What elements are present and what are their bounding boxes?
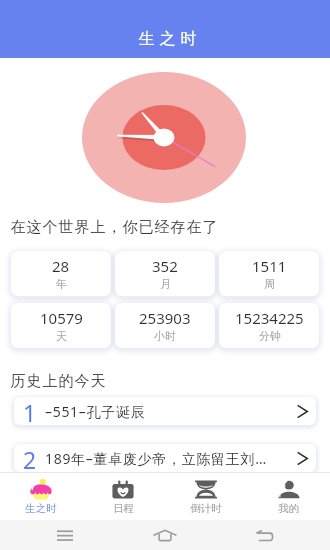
staticText: 小时 xyxy=(154,329,176,343)
staticText: 生之时 xyxy=(136,29,199,49)
staticText: 15234225 xyxy=(235,308,304,328)
other: 我的 xyxy=(277,479,301,500)
staticText: 天 xyxy=(56,329,67,343)
staticText: 分钟 xyxy=(259,329,281,343)
staticText: 日程 xyxy=(113,502,134,515)
button[interactable]: 253903 xyxy=(115,303,215,348)
button[interactable]: 15234225 xyxy=(219,303,319,348)
other: 倒计时 xyxy=(194,479,218,500)
staticText: 352 xyxy=(152,256,178,276)
staticText: 生之时 xyxy=(25,502,57,515)
staticText: –551–孔子诞辰 xyxy=(45,402,292,421)
button[interactable]: 28 xyxy=(11,251,111,296)
staticText: 周 xyxy=(264,277,275,291)
staticText: 我的 xyxy=(278,502,299,515)
staticText: 1511 xyxy=(252,256,287,276)
button[interactable]: 生之时 xyxy=(0,474,82,520)
staticText: 历史上的今天 xyxy=(10,372,106,391)
button[interactable]: 352 xyxy=(115,251,215,296)
staticText: 倒计时 xyxy=(190,502,222,515)
staticText: 月 xyxy=(160,277,171,291)
button[interactable]: 倒计时 xyxy=(164,474,247,520)
other: 生之时 xyxy=(28,479,54,500)
staticText: 189年–董卓废少帝，立陈留王刘… xyxy=(45,449,292,468)
other: Home xyxy=(154,530,176,541)
other: 日程 xyxy=(111,479,135,500)
staticText: 2 xyxy=(23,444,37,472)
button[interactable]: 日程 xyxy=(82,474,164,520)
button[interactable]: 1511 xyxy=(219,251,319,296)
staticText: 10579 xyxy=(40,308,83,328)
staticText: 28 xyxy=(52,256,70,276)
staticText: 253903 xyxy=(139,308,191,328)
staticText: 1 xyxy=(23,397,37,425)
button[interactable]: 2 xyxy=(14,444,316,472)
staticText: 年 xyxy=(56,277,67,291)
other: Recents xyxy=(57,530,73,540)
button[interactable]: 我的 xyxy=(247,474,330,520)
button[interactable]: 1 xyxy=(14,397,316,425)
staticText: 在这个世界上，你已经存在了 xyxy=(10,218,218,237)
other: Back xyxy=(256,530,274,541)
button[interactable]: 10579 xyxy=(11,303,111,348)
